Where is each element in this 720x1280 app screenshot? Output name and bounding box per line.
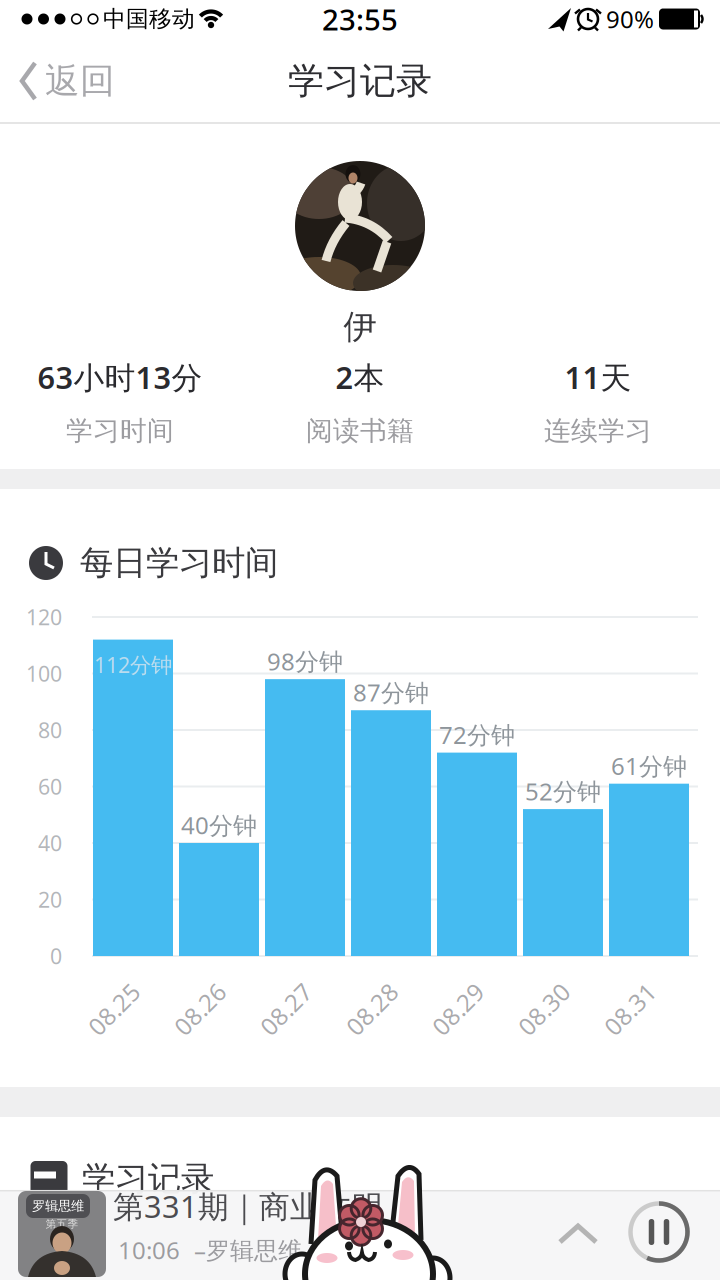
staticText: 连续学习 [544, 414, 652, 447]
staticText: 0 [50, 942, 62, 970]
staticText: 中国移动 [103, 5, 195, 33]
staticText: 2本 [335, 357, 384, 397]
staticText: 第331期｜商业文明 [113, 1186, 383, 1226]
staticText: 52分钟 [525, 775, 601, 807]
staticText: 112分钟 [94, 650, 172, 679]
staticText: 学习记录 [288, 59, 432, 103]
staticText: 返回 [45, 60, 115, 102]
staticText: 40 [38, 829, 62, 857]
staticText: 61分钟 [611, 750, 687, 782]
staticText: 98分钟 [267, 645, 343, 677]
staticText: 08.29 [427, 993, 489, 1025]
staticText: 08.31 [599, 993, 661, 1025]
staticText: 阅读书籍 [306, 414, 414, 447]
staticText: 87分钟 [353, 676, 429, 708]
staticText: 10:06 [118, 1234, 180, 1266]
staticText: 11天 [564, 357, 631, 397]
button[interactable]: 返回 [19, 51, 115, 111]
staticText: 学习时间 [66, 414, 174, 447]
staticText: –罗辑思维 [194, 1234, 302, 1266]
staticText: 08.27 [255, 993, 317, 1025]
staticText: 罗辑思维 [32, 1198, 84, 1214]
staticText: 08.30 [513, 993, 575, 1025]
staticText: 每日学习时间 [80, 542, 278, 583]
staticText: 20 [38, 885, 62, 914]
staticText: 72分钟 [439, 719, 515, 751]
staticText: 伊 [343, 306, 376, 347]
staticText: 60 [38, 772, 62, 801]
staticText: 100 [26, 659, 62, 688]
staticText: 第五季 [45, 1217, 78, 1230]
staticText: 80 [38, 716, 62, 744]
staticText: 08.28 [341, 993, 403, 1025]
button[interactable]: 暂停 [628, 1201, 690, 1263]
staticText: 90% [606, 3, 654, 35]
staticText: 120 [26, 603, 62, 631]
staticText: 40分钟 [181, 809, 257, 841]
staticText: 08.26 [169, 993, 231, 1025]
button[interactable]: 收起 [556, 1222, 600, 1250]
staticText: 23:55 [322, 0, 398, 38]
staticText: 63小时13分 [37, 357, 202, 397]
staticText: 08.25 [83, 993, 145, 1025]
staticText: 学习记录 [82, 1158, 214, 1199]
button[interactable]: 打开播放器 [18, 1190, 438, 1278]
